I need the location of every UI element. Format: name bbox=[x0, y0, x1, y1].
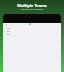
button[interactable] bbox=[3, 33, 61, 36]
staticText: one app for all teams bbox=[0, 8, 64, 11]
button[interactable]: Team colour bbox=[6, 24, 7, 26]
staticText: Multiple Teams bbox=[0, 3, 64, 8]
button[interactable]: Profile bbox=[29, 23, 31, 25]
button[interactable] bbox=[3, 27, 61, 30]
button[interactable] bbox=[3, 30, 61, 33]
